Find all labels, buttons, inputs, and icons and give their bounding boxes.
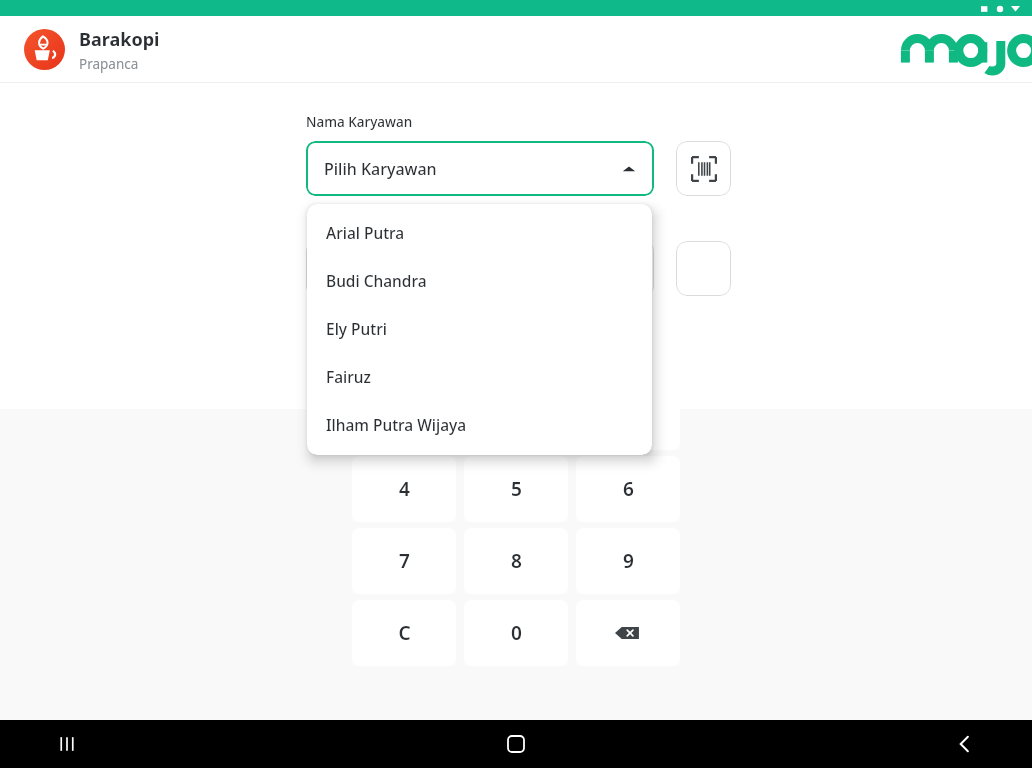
button[interactable]: Pilih Karyawan xyxy=(306,141,654,196)
button[interactable]: 4 xyxy=(352,456,456,522)
button[interactable]: Budi Chandra xyxy=(307,256,652,304)
button[interactable]: 5 xyxy=(464,456,568,522)
staticText: Arial Putra xyxy=(326,222,405,243)
button[interactable]: 7 xyxy=(352,528,456,594)
button[interactable]: Ely Putri xyxy=(307,304,652,352)
staticText: Pilih Karyawan xyxy=(324,158,437,180)
button[interactable]: 0 xyxy=(464,600,568,666)
staticText: Ilham Putra Wijaya xyxy=(326,414,467,435)
button[interactable]: 8 xyxy=(464,528,568,594)
staticText: Budi Chandra xyxy=(326,270,427,291)
staticText: 4 xyxy=(399,476,410,502)
button[interactable]: 3 xyxy=(576,384,680,450)
button[interactable]: Fairuz xyxy=(307,352,652,400)
button[interactable]: 1 xyxy=(352,384,456,450)
button[interactable]: Home xyxy=(493,721,539,767)
staticText: 6 xyxy=(623,476,634,502)
button[interactable]: Action xyxy=(676,241,731,296)
staticText: C xyxy=(398,620,411,646)
button[interactable]: Ilham Putra Wijaya xyxy=(307,400,652,448)
button[interactable]: Scan barcode xyxy=(676,141,731,196)
button[interactable]: 2 xyxy=(464,384,568,450)
staticText: 8 xyxy=(511,548,522,574)
button[interactable]: 6 xyxy=(576,456,680,522)
button[interactable] xyxy=(306,241,654,296)
button[interactable]: 9 xyxy=(576,528,680,594)
staticText: 1 xyxy=(399,404,410,430)
button[interactable]: Back xyxy=(942,721,988,767)
button[interactable]: C xyxy=(352,600,456,666)
staticText: 0 xyxy=(511,620,522,646)
staticText: Barakopi xyxy=(79,27,160,52)
button[interactable]: Arial Putra xyxy=(307,208,652,256)
staticText: Fairuz xyxy=(326,366,371,387)
button[interactable]: Backspace xyxy=(576,600,680,666)
staticText: Prapanca xyxy=(79,55,139,73)
staticText: Nama Karyawan xyxy=(306,113,413,131)
staticText: Ely Putri xyxy=(326,318,387,339)
staticText: 7 xyxy=(399,548,410,574)
staticText: 5 xyxy=(511,476,522,502)
staticText: 9 xyxy=(623,548,634,574)
button[interactable]: Recent apps xyxy=(44,721,90,767)
